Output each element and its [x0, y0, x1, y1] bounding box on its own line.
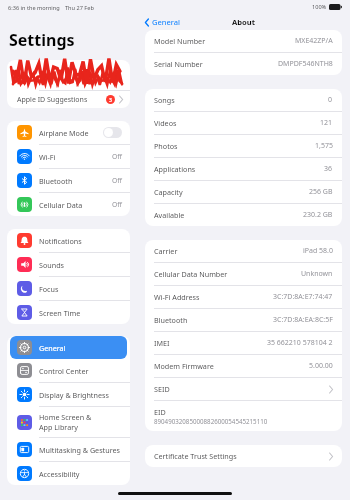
staticText: Modem Firmware	[154, 361, 214, 371]
button[interactable]: Model Number	[145, 30, 342, 52]
staticText: 5.00.00	[309, 361, 333, 371]
button[interactable]: Wi-Fi Address	[145, 286, 342, 308]
staticText: Model Number	[154, 36, 206, 46]
staticText: MXE42ZP/A	[295, 36, 333, 46]
staticText: DMPDF546NTH8	[278, 59, 333, 69]
staticText: Display & Brightness	[39, 390, 109, 400]
staticText: 6:36 in the morning	[8, 4, 60, 12]
staticText: Airplane Mode	[39, 128, 89, 138]
staticText: 3C:7D:8A:E7:74:47	[273, 292, 333, 302]
staticText: iPad 58.0	[303, 246, 333, 256]
staticText: About	[232, 17, 256, 27]
button[interactable]: General	[137, 15, 186, 29]
staticText: 230.2 GB	[303, 210, 333, 220]
button[interactable]	[7, 60, 130, 90]
staticText: Certificate Trust Settings	[154, 451, 237, 461]
button[interactable]: EID	[145, 401, 342, 431]
button[interactable]: Cellular Data Number	[145, 263, 342, 285]
staticText: Unknown	[301, 269, 333, 279]
staticText: 35 662210 578104 2	[267, 338, 333, 348]
staticText: 0	[328, 95, 333, 105]
button[interactable]: Songs	[145, 89, 342, 111]
button[interactable]: Bluetooth	[145, 309, 342, 331]
button[interactable]: Control Center	[7, 359, 130, 382]
button[interactable]: Notifications	[7, 229, 130, 252]
staticText: Screen Time	[39, 308, 81, 318]
staticText: 3C:7D:8A:EA:8C:5F	[273, 315, 333, 325]
staticText: Cellular Data Number	[154, 269, 228, 279]
button[interactable]: Bluetooth	[7, 169, 130, 192]
staticText: Accessibility	[39, 469, 80, 479]
staticText: 3	[109, 96, 112, 103]
button[interactable]: Multitasking & Gestures	[7, 438, 130, 461]
staticText: Thu 27 Feb	[65, 4, 94, 12]
staticText: Settings	[9, 29, 75, 51]
button[interactable]: Apple ID Suggestions	[7, 91, 130, 108]
button[interactable]: Carrier	[145, 240, 342, 262]
staticText: EID	[154, 407, 166, 417]
staticText: Songs	[154, 95, 175, 105]
staticText: Applications	[154, 164, 196, 174]
staticText: Bluetooth	[154, 315, 188, 325]
button[interactable]: General	[10, 336, 127, 359]
staticText: Apple ID Suggestions	[17, 95, 106, 105]
staticText: Available	[154, 210, 185, 220]
button[interactable]: Applications	[145, 158, 342, 180]
button[interactable]: Serial Number	[145, 53, 342, 75]
staticText: Cellular Data	[39, 200, 83, 210]
staticText: Videos	[154, 118, 177, 128]
staticText: Off	[112, 176, 122, 185]
staticText: Off	[112, 152, 122, 161]
button[interactable]: Cellular Data	[7, 193, 130, 216]
staticText: Focus	[39, 284, 59, 294]
button[interactable]: SEID	[145, 378, 342, 400]
staticText: Photos	[154, 141, 178, 151]
staticText: 1,575	[315, 141, 333, 151]
button[interactable]: Sounds	[7, 253, 130, 276]
button[interactable]: Capacity	[145, 181, 342, 203]
button[interactable]: Photos	[145, 135, 342, 157]
button[interactable]: Airplane Mode	[7, 121, 130, 144]
staticText: Sounds	[39, 260, 65, 270]
staticText: Serial Number	[154, 59, 203, 69]
staticText: 256 GB	[309, 187, 333, 197]
button[interactable]: IMEI	[145, 332, 342, 354]
staticText: 100%	[312, 3, 327, 11]
staticText: Control Center	[39, 366, 89, 376]
button[interactable]: Modem Firmware	[145, 355, 342, 377]
staticText: 89049032085000882600054545215110	[154, 417, 268, 425]
staticText: Wi-Fi	[39, 152, 56, 162]
button[interactable]: Certificate Trust Settings	[145, 445, 342, 467]
button[interactable]: Display & Brightness	[7, 383, 130, 406]
button[interactable]: Screen Time	[7, 301, 130, 324]
staticText: Wi-Fi Address	[154, 292, 200, 302]
button[interactable]: Accessibility	[7, 462, 130, 485]
staticText: Capacity	[154, 187, 183, 197]
staticText: Off	[112, 200, 122, 209]
staticText: General	[152, 17, 180, 27]
staticText: Multitasking & Gestures	[39, 445, 120, 455]
staticText: General	[39, 343, 66, 353]
button[interactable]: Available	[145, 204, 342, 226]
staticText: Bluetooth	[39, 176, 73, 186]
staticText: Notifications	[39, 236, 82, 246]
staticText: 121	[320, 118, 333, 128]
staticText: 36	[324, 164, 333, 174]
button[interactable]: Videos	[145, 112, 342, 134]
staticText: SEID	[154, 384, 170, 394]
staticText: App Library	[39, 422, 78, 432]
staticText: Home Screen &	[39, 412, 92, 422]
staticText: Carrier	[154, 246, 178, 256]
button[interactable]: Wi-Fi	[7, 145, 130, 168]
staticText: IMEI	[154, 338, 170, 348]
button[interactable]: Focus	[7, 277, 130, 300]
button[interactable]: Home Screen &	[7, 407, 130, 437]
